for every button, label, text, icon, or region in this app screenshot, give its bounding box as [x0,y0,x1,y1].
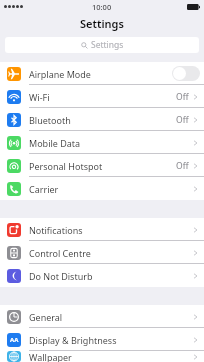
staticText: Settings [91,39,124,51]
staticText: Off [176,160,189,172]
staticText: Do Not Disturb [29,270,93,282]
staticText: Personal Hotspot [29,160,103,172]
button[interactable]: Notifications [0,218,204,241]
staticText: AA [10,336,19,344]
button[interactable]: Settings [5,37,199,53]
staticText: Control Centre [29,247,91,259]
button[interactable]: Wi-Fi [0,85,204,108]
staticText: Carrier [29,183,59,195]
staticText: Wallpaper [29,351,72,362]
staticText: Off [176,91,189,103]
button[interactable]: Toggle Airplane Mode [172,66,200,81]
button[interactable]: Airplane Mode [0,62,204,85]
staticText: Mobile Data [29,137,81,149]
button[interactable]: General [0,305,204,328]
button[interactable]: Personal Hotspot [0,154,204,177]
staticText: Display & Brightness [29,334,117,346]
button[interactable]: Mobile Data [0,131,204,154]
staticText: Off [176,114,189,126]
button[interactable]: Carrier [0,177,204,200]
staticText: 10:00 [92,2,112,12]
button[interactable]: Do Not Disturb [0,264,204,287]
staticText: Bluetooth [29,114,71,126]
button[interactable]: AA [0,328,204,351]
staticText: Wi-Fi [29,91,50,103]
staticText: Settings [80,16,124,31]
staticText: Airplane Mode [29,68,91,80]
staticText: Notifications [29,224,83,236]
button[interactable]: Wallpaper [0,351,204,362]
button[interactable]: Bluetooth [0,108,204,131]
button[interactable]: Control Centre [0,241,204,264]
staticText: General [29,311,63,323]
